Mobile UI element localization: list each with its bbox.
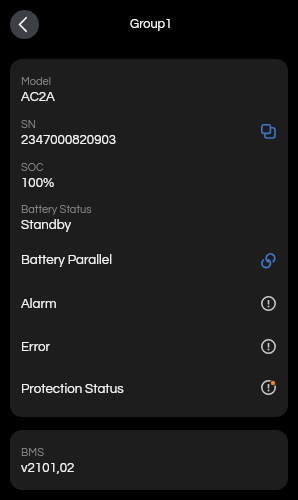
button[interactable]: Battery Parallel [10, 238, 288, 281]
staticText: Battery Status [21, 204, 92, 215]
other: Protection Status [261, 380, 276, 395]
staticText: Error [21, 340, 261, 354]
staticText: v2101,02 [21, 461, 75, 475]
staticText: Group1 [130, 18, 172, 31]
button[interactable]: Error [10, 325, 288, 368]
staticText: BMS [21, 447, 44, 458]
staticText: Alarm [21, 297, 261, 311]
button[interactable]: Copy serial number [261, 124, 275, 138]
staticText: SN [21, 119, 36, 130]
staticText: Battery Parallel [21, 253, 263, 267]
button[interactable]: Protection Status [10, 367, 288, 410]
staticText: SOC [21, 162, 44, 173]
button[interactable]: Alarm [10, 282, 288, 325]
other: Battery Parallel [261, 253, 274, 266]
staticText: 2347000820903 [21, 133, 117, 147]
staticText: Protection Status [21, 382, 261, 396]
staticText: AC2A [21, 90, 55, 104]
button[interactable]: Back [10, 10, 39, 39]
other: Alarm [261, 296, 276, 311]
staticText: 100% [21, 176, 55, 190]
staticText: Model [21, 76, 51, 87]
other: Error [261, 339, 276, 354]
staticText: Standby [21, 218, 72, 232]
